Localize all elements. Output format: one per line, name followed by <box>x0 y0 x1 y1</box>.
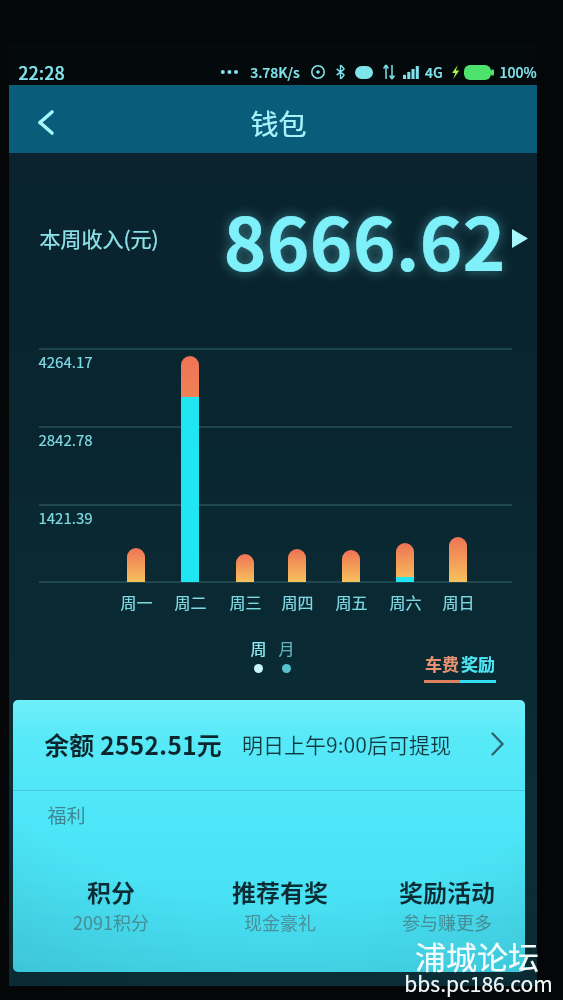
staticText: 车费 <box>425 651 459 676</box>
staticText: 1421.39 <box>38 507 93 529</box>
staticText: 3.78K/s <box>250 62 300 82</box>
button[interactable]: 月 <box>276 636 296 673</box>
staticText: 22:28 <box>18 59 65 85</box>
staticText: 周三 <box>229 590 262 613</box>
button[interactable]: 车费 <box>424 651 460 683</box>
staticText: 4G <box>425 62 443 82</box>
button[interactable]: 余额 2552.51元 <box>13 700 525 788</box>
staticText: 周六 <box>389 590 422 613</box>
staticText: 钱包 <box>250 103 307 144</box>
staticText: 8666.62 <box>223 186 506 278</box>
staticText: 浦城论坛 <box>415 933 539 978</box>
staticText: 现金豪礼 <box>244 909 316 935</box>
staticText: 奖励 <box>461 651 495 676</box>
staticText: bbs.pc186.com <box>404 968 553 998</box>
staticText: 2842.78 <box>38 429 93 451</box>
staticText: 100% <box>499 62 537 82</box>
button[interactable]: 奖励活动 <box>377 874 517 935</box>
staticText: 奖励活动 <box>399 874 495 909</box>
staticText: 2091积分 <box>73 909 149 935</box>
button[interactable]: 本周收入(元) <box>9 192 537 284</box>
staticText: 4264.17 <box>38 351 93 373</box>
staticText: 余额 2552.51元 <box>44 726 222 762</box>
button[interactable]: 推荐有奖 <box>210 874 350 935</box>
staticText: 8666.62 <box>223 186 506 278</box>
staticText: 推荐有奖 <box>232 874 328 909</box>
staticText: 本周收入(元) <box>39 223 159 253</box>
button[interactable]: 奖励 <box>460 651 496 683</box>
button[interactable]: 积分 <box>41 874 181 935</box>
staticText: 积分 <box>87 874 135 909</box>
staticText: 福利 <box>47 801 86 829</box>
staticText: 周二 <box>174 590 207 613</box>
staticText: 参与赚更多 <box>402 909 492 935</box>
staticText: 周日 <box>442 590 475 613</box>
staticText: 周一 <box>120 590 153 613</box>
staticText: 明日上午9:00后可提现 <box>242 729 451 759</box>
staticText: 周四 <box>281 590 314 613</box>
button[interactable]: 周 <box>248 636 268 673</box>
staticText: 周五 <box>335 590 368 613</box>
staticText: 周 <box>250 636 267 659</box>
staticText: 月 <box>278 636 295 659</box>
button[interactable]: Back <box>14 87 76 151</box>
